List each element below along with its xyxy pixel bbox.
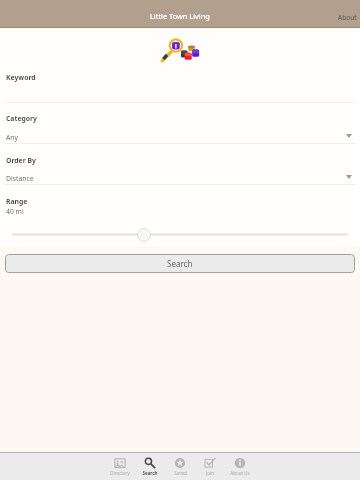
- staticText: Distance: [6, 174, 34, 183]
- staticText: Search: [142, 470, 158, 476]
- button[interactable]: Join: [195, 452, 225, 480]
- button[interactable]: Search: [5, 254, 355, 273]
- staticText: Saved: [174, 470, 187, 476]
- staticText: Any: [6, 133, 19, 142]
- staticText: Keyword: [6, 73, 36, 82]
- button[interactable]: About Us: [225, 452, 255, 480]
- button[interactable]: Directory: [105, 452, 135, 480]
- staticText: About Us: [230, 470, 250, 476]
- button[interactable]: Saved: [165, 452, 195, 480]
- staticText: Search: [167, 258, 193, 269]
- staticText: Little Town Living: [150, 11, 210, 21]
- button[interactable]: Keyword text field: [0, 70, 360, 102]
- button[interactable]: About: [330, 0, 360, 28]
- button[interactable]: Search: [135, 452, 165, 480]
- staticText: Directory: [110, 470, 130, 476]
- staticText: Order By: [6, 156, 36, 165]
- staticText: Range: [6, 197, 28, 206]
- staticText: About: [338, 13, 357, 21]
- staticText: 40 mi: [6, 207, 24, 216]
- button[interactable]: Order By: [0, 144, 360, 184]
- staticText: Join: [206, 470, 214, 476]
- button[interactable]: Category: [0, 103, 360, 143]
- button[interactable]: Range slider: [137, 228, 151, 242]
- staticText: Category: [6, 114, 37, 123]
